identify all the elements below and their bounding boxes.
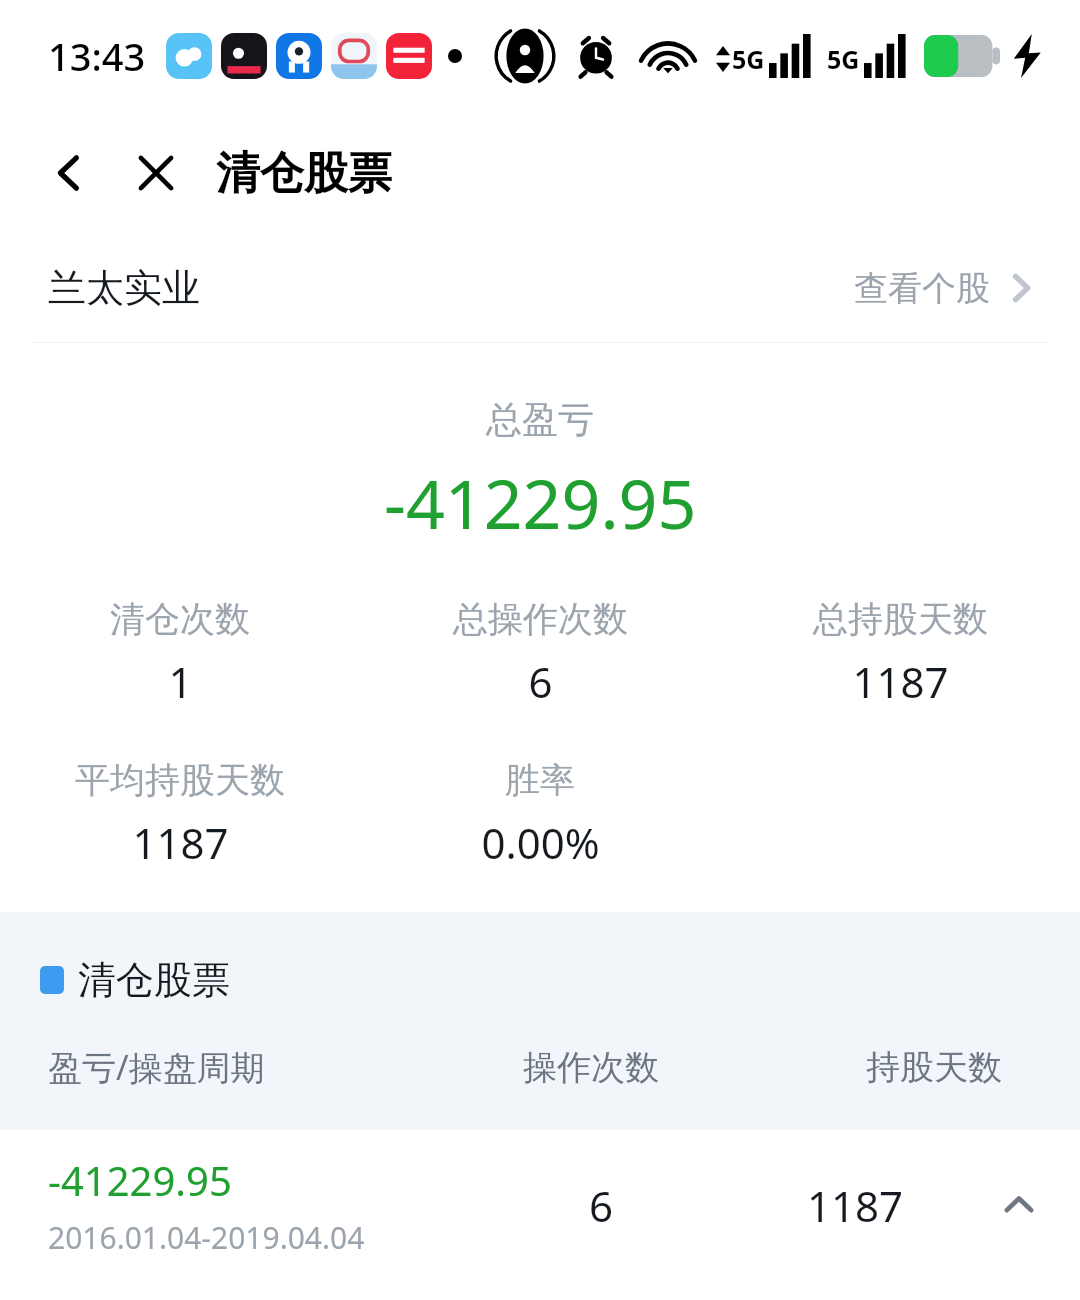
staticText: 1187 xyxy=(132,814,229,871)
staticText: 清仓股票 xyxy=(78,956,230,1004)
staticText: 胜率 xyxy=(505,758,575,802)
button[interactable]: 兰太实业 xyxy=(0,234,1080,342)
staticText: 清仓次数 xyxy=(110,597,250,641)
staticText: 清仓股票 xyxy=(216,146,392,201)
staticText: 查看个股 xyxy=(854,267,990,310)
button[interactable]: Close xyxy=(120,137,192,209)
staticText: 平均持股天数 xyxy=(75,758,285,802)
button[interactable]: Back xyxy=(34,137,106,209)
staticText: 2016.01.04-2019.04.04 xyxy=(48,1217,365,1258)
staticText: 盈亏/操盘周期 xyxy=(48,1044,265,1090)
staticText: 兰太实业 xyxy=(48,264,200,312)
staticText: -41229.95 xyxy=(384,456,697,549)
staticText: 1 xyxy=(168,653,193,710)
staticText: 总操作次数 xyxy=(453,597,628,641)
staticText: -41229.95 xyxy=(48,1153,232,1207)
staticText: 总持股天数 xyxy=(813,597,988,641)
staticText: 5G xyxy=(732,42,765,76)
staticText: 持股天数 xyxy=(866,1046,1002,1089)
button[interactable]: -41229.95 xyxy=(0,1130,1080,1280)
staticText: 0.00% xyxy=(481,814,600,871)
staticText: 1187 xyxy=(807,1177,904,1234)
staticText: 13:43 xyxy=(48,30,146,82)
staticText: 操作次数 xyxy=(523,1046,659,1089)
staticText: 1187 xyxy=(852,653,949,710)
staticText: 总盈亏 xyxy=(486,397,594,442)
other: Collapse xyxy=(992,1178,1046,1232)
staticText: 5G xyxy=(827,42,860,76)
staticText: 6 xyxy=(589,1177,614,1234)
staticText: 6 xyxy=(528,653,553,710)
